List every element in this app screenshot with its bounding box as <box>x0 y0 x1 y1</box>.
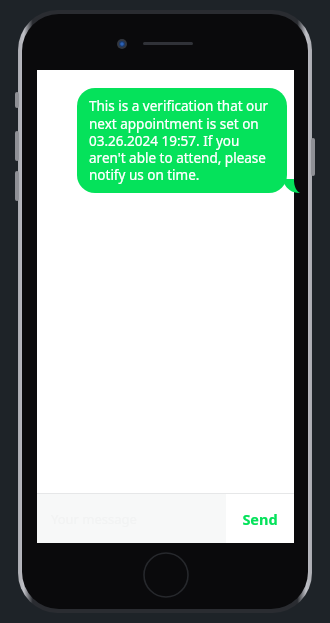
button[interactable]: This is a verification that our next app… <box>77 88 287 193</box>
staticText: Send <box>242 509 278 529</box>
staticText: This is a verification that our next app… <box>89 97 275 184</box>
button[interactable]: Send <box>226 494 294 543</box>
